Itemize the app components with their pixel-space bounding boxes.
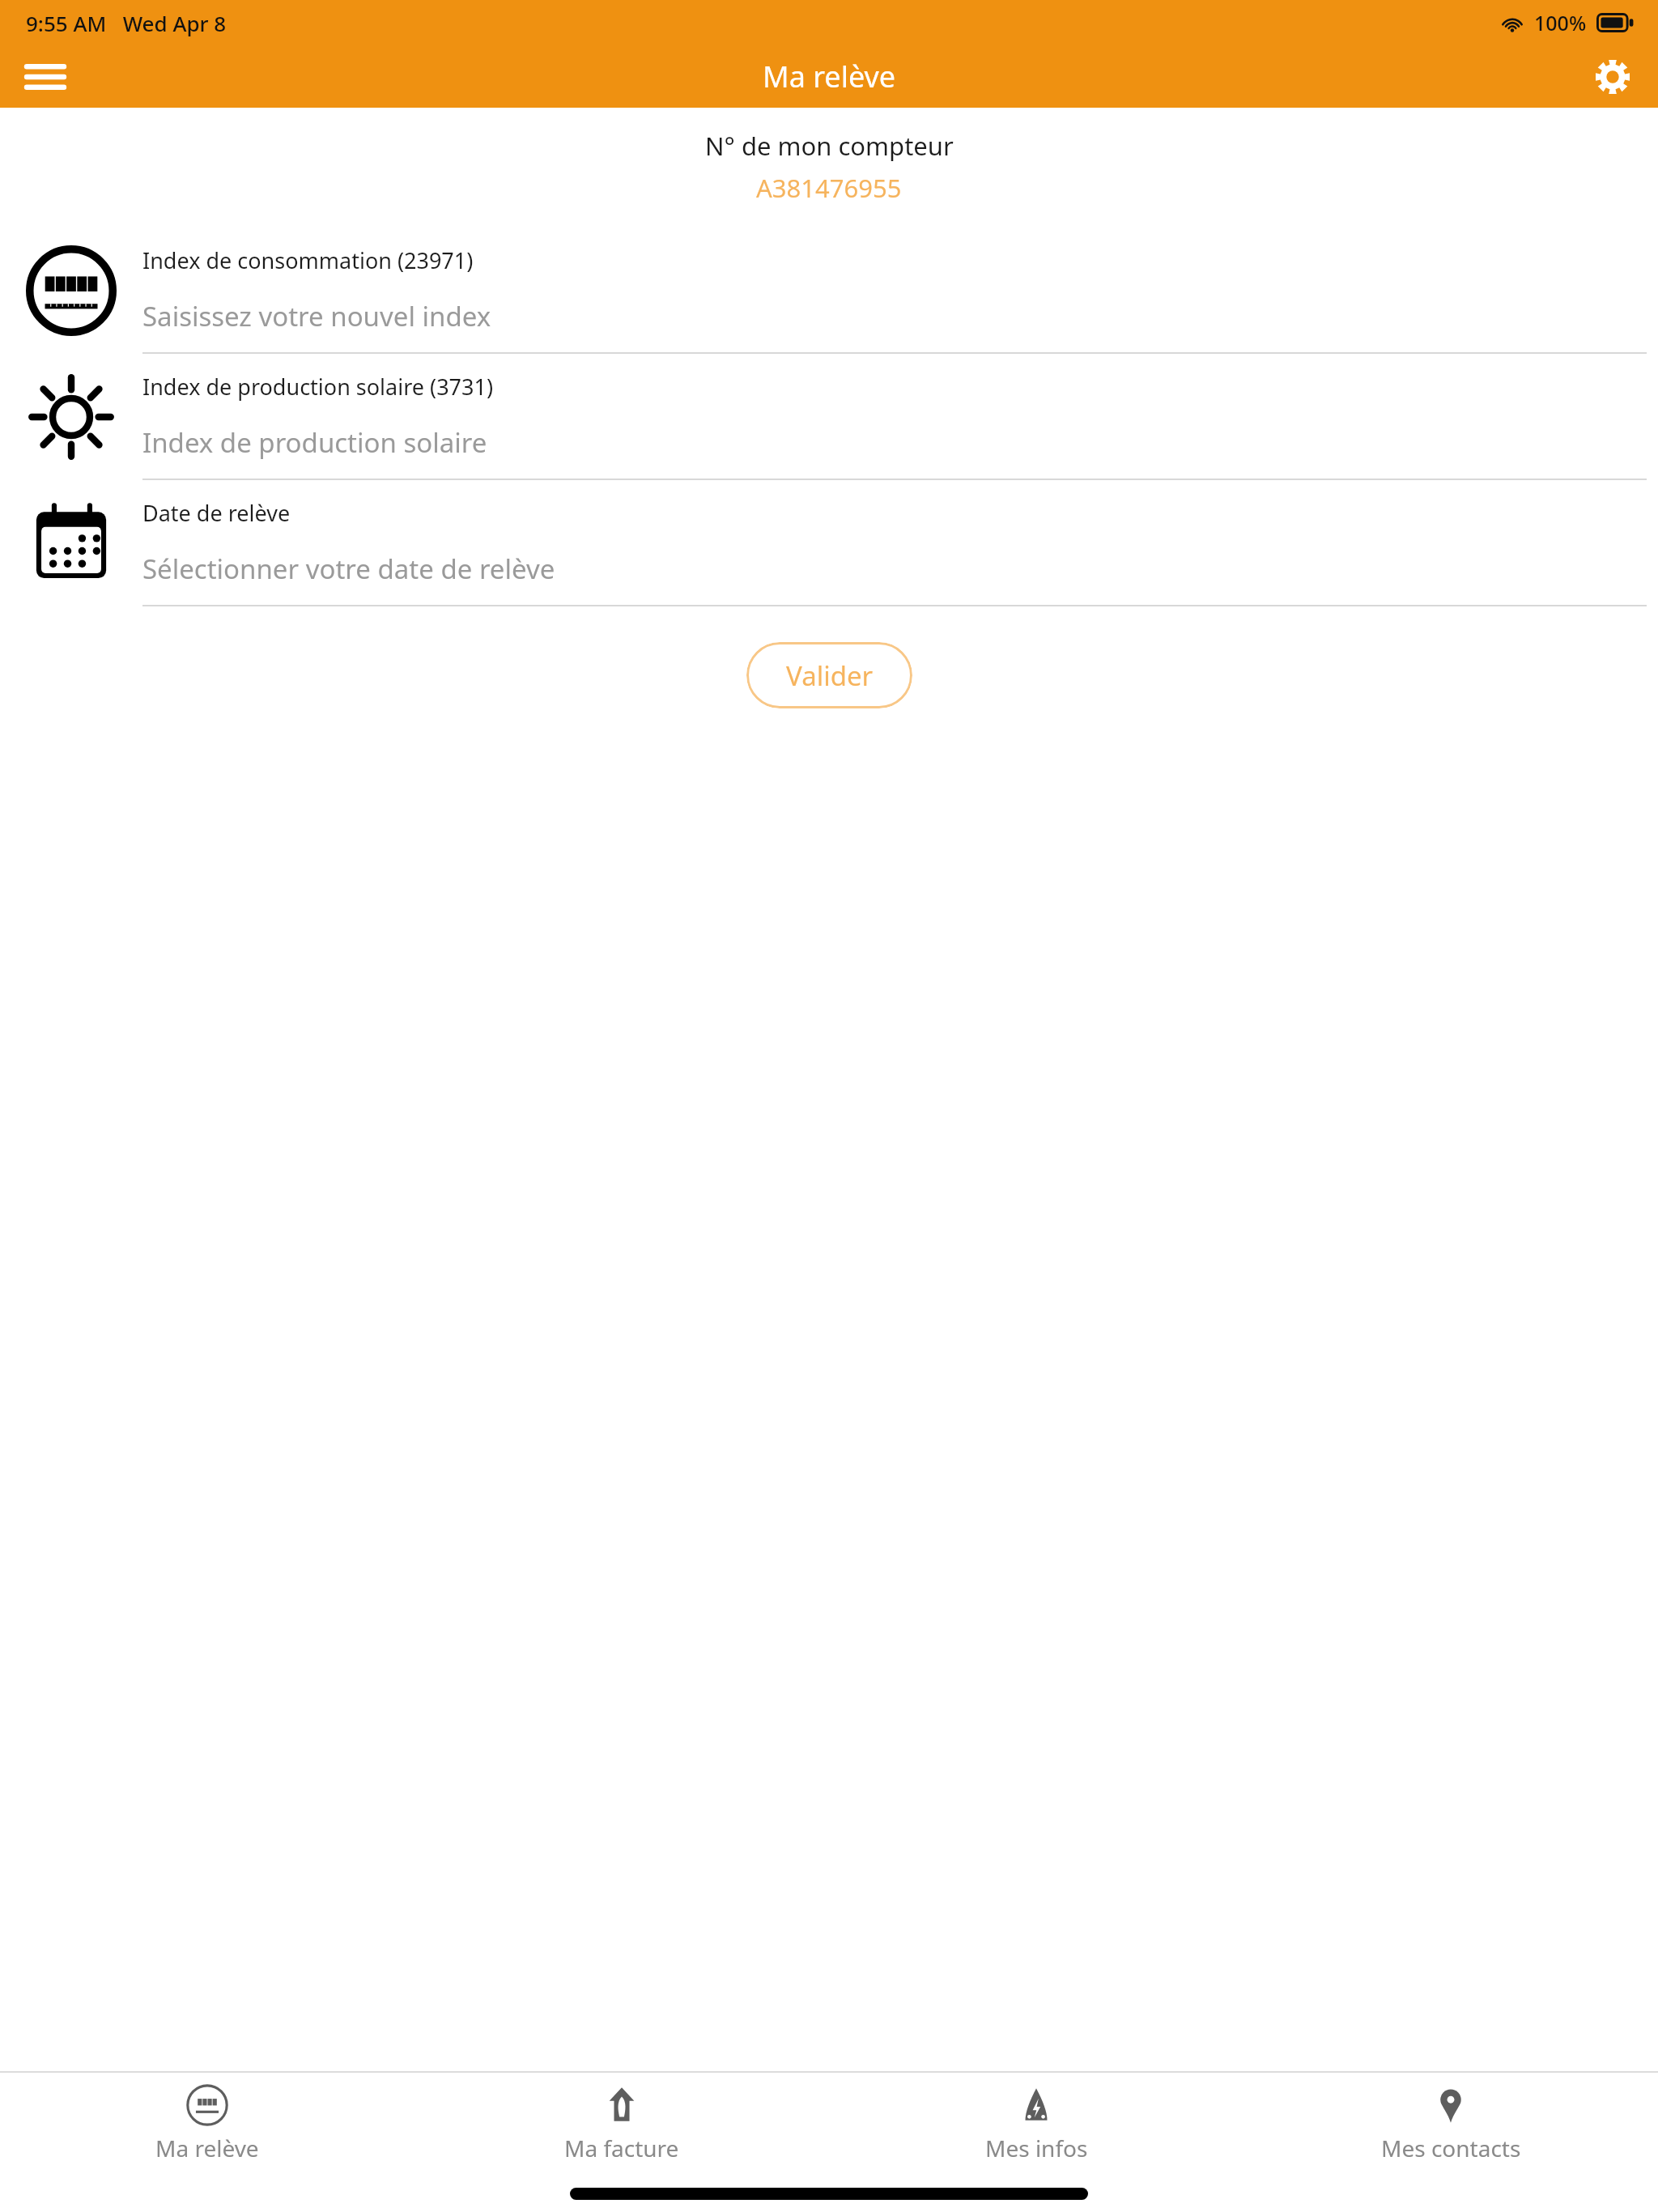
button[interactable]: Valider [746, 642, 912, 708]
staticText: Mes infos [985, 2133, 1088, 2163]
button[interactable]: Index de consommation (23971) [0, 228, 1658, 354]
staticText: 9:55 AM Wed Apr 8 [26, 9, 227, 37]
staticText: Index de production solaire [142, 424, 487, 461]
button[interactable]: Menu [11, 45, 79, 108]
staticText: Ma relève [155, 2133, 259, 2163]
staticText: Saisissez votre nouvel index [142, 298, 491, 334]
staticText: Valider [786, 657, 874, 694]
staticText: N° de mon compteur [705, 129, 954, 163]
staticText: Ma relève [763, 57, 896, 96]
button[interactable]: Mes infos [829, 2073, 1243, 2175]
button[interactable]: Ma facture [414, 2073, 829, 2175]
button[interactable]: Ma relève [0, 2073, 414, 2175]
staticText: Index de consommation (23971) [142, 245, 474, 275]
button[interactable]: Mes contacts [1243, 2073, 1658, 2175]
staticText: A381476955 [756, 171, 902, 205]
staticText: 100% [1534, 9, 1587, 36]
staticText: Ma facture [564, 2133, 679, 2163]
staticText: Sélectionner votre date de relève [142, 551, 555, 587]
button[interactable]: Date de relève [0, 480, 1658, 606]
staticText: Mes contacts [1381, 2133, 1521, 2163]
button[interactable]: Settings [1579, 45, 1647, 108]
staticText: Index de production solaire (3731) [142, 372, 494, 402]
button[interactable]: Index de production solaire (3731) [0, 354, 1658, 480]
staticText: Date de relève [142, 498, 291, 528]
